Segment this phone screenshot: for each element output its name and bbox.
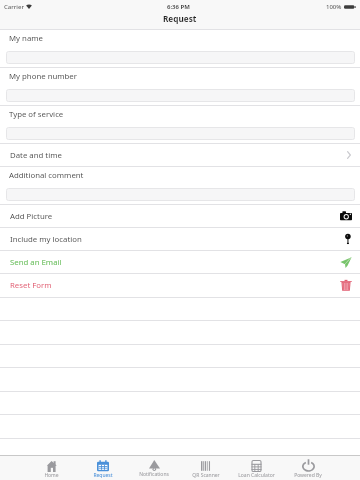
- staticText: Additional comment: [9, 170, 84, 181]
- staticText: Home: [44, 472, 59, 479]
- button[interactable]: Loan Calculator: [231, 456, 282, 480]
- staticText: 6:36 PM: [167, 3, 190, 11]
- button[interactable]: My phone number: [0, 68, 360, 105]
- staticText: Add Picture: [10, 211, 53, 222]
- button[interactable]: Include my location: [0, 228, 360, 250]
- other: Send an Email: [340, 256, 352, 268]
- staticText: Reset Form: [10, 280, 52, 291]
- button[interactable]: Notifications: [128, 456, 179, 480]
- button[interactable]: Type of service: [0, 106, 360, 143]
- button[interactable]: Reset Form: [0, 274, 360, 296]
- button[interactable]: My name: [0, 30, 360, 67]
- staticText: My phone number: [9, 71, 77, 82]
- staticText: 100%: [326, 3, 342, 11]
- button[interactable]: Request: [77, 456, 128, 480]
- staticText: Type of service: [9, 109, 64, 120]
- staticText: Request: [163, 13, 197, 24]
- staticText: My name: [9, 33, 43, 44]
- other: Add Picture: [340, 210, 352, 222]
- button[interactable]: Send an Email: [0, 251, 360, 273]
- staticText: Loan Calculator: [238, 472, 275, 479]
- button[interactable]: Home: [26, 456, 77, 480]
- staticText: Request: [93, 472, 113, 479]
- button[interactable]: QR Scanner: [180, 456, 231, 480]
- staticText: Powered By: [294, 472, 322, 479]
- staticText: Send an Email: [10, 257, 62, 268]
- other: Reset Form: [340, 279, 352, 291]
- other: Include my location: [340, 233, 352, 245]
- button[interactable]: Powered By: [282, 456, 333, 480]
- staticText: Date and time: [10, 150, 62, 161]
- button[interactable]: Additional comment: [0, 167, 360, 204]
- button[interactable]: Date and time: [0, 144, 360, 166]
- staticText: QR Scanner: [192, 472, 220, 479]
- button[interactable]: Add Picture: [0, 205, 360, 227]
- staticText: Notifications: [139, 471, 169, 478]
- staticText: Include my location: [10, 234, 82, 245]
- staticText: Carrier: [4, 3, 24, 11]
